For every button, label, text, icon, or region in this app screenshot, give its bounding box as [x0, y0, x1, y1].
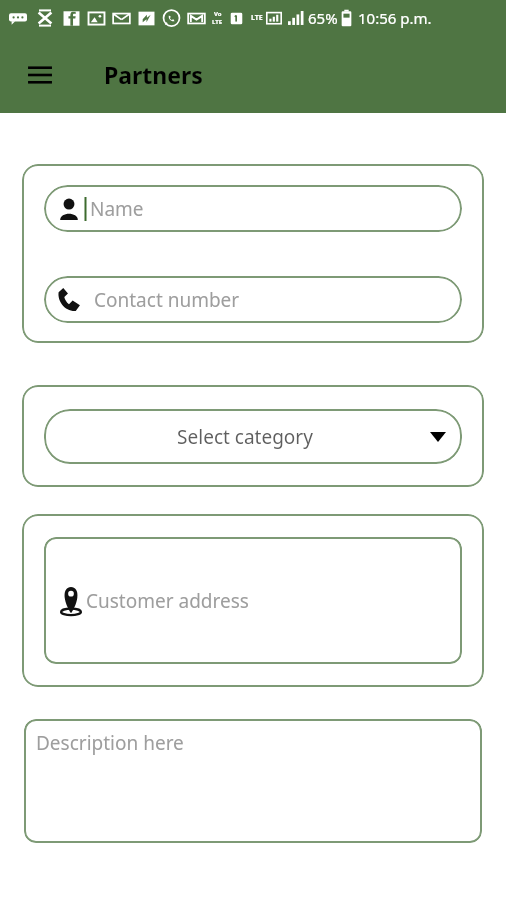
staticText: LTE — [212, 18, 223, 26]
button[interactable]: Contact number — [44, 276, 462, 323]
staticText: 65% — [308, 8, 338, 28]
staticText: 10:56 p.m. — [358, 8, 432, 28]
staticText: Partners — [104, 59, 203, 90]
staticText: LTE — [251, 13, 263, 23]
staticText: Customer address — [86, 588, 249, 614]
staticText: Contact number — [94, 287, 240, 313]
button[interactable]: Open navigation menu — [16, 51, 64, 99]
button[interactable]: Description here — [24, 719, 482, 843]
button[interactable]: Name — [44, 185, 462, 232]
staticText: Select category — [60, 424, 430, 450]
button[interactable]: Select category — [44, 409, 462, 464]
button[interactable]: Customer address — [44, 537, 462, 664]
staticText: Name — [90, 196, 144, 222]
staticText: Vo — [214, 10, 222, 18]
staticText: Description here — [36, 730, 184, 756]
